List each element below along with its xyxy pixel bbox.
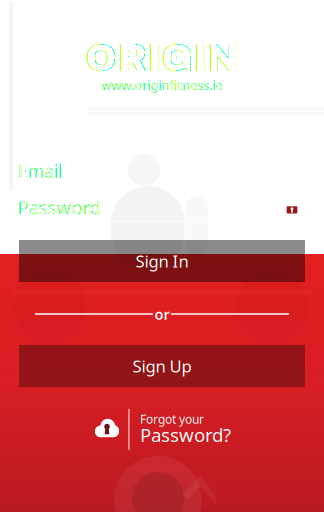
- staticText: Sign Up: [132, 355, 191, 377]
- staticText: or: [154, 304, 169, 324]
- button[interactable]: Forgot your: [95, 407, 229, 451]
- staticText: Email: [18, 159, 62, 183]
- staticText: ORIGIN: [85, 37, 239, 79]
- staticText: Forgot your: [140, 411, 204, 427]
- staticText: Sign In: [135, 250, 188, 272]
- staticText: Password?: [140, 422, 231, 447]
- button[interactable]: Sign Up: [19, 345, 305, 387]
- staticText: Password: [17, 194, 100, 220]
- staticText: www.originfitness.ie: [101, 76, 222, 94]
- button[interactable]: Sign In: [19, 240, 305, 282]
